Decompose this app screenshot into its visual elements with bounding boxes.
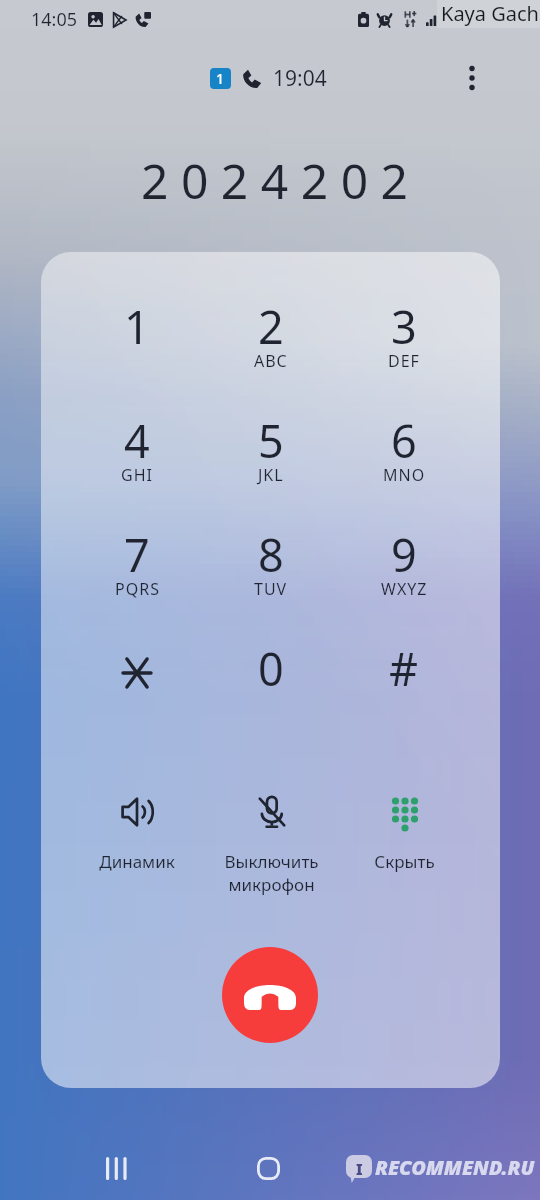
staticText: 98% — [463, 8, 495, 30]
staticText: DEF — [388, 350, 420, 372]
staticText: MNO — [383, 464, 426, 486]
button[interactable]: 3 — [344, 296, 464, 400]
staticText: 7 — [124, 524, 150, 585]
staticText: 2 — [258, 296, 284, 357]
button[interactable]: 6 — [344, 410, 464, 514]
button[interactable]: Recents — [97, 1148, 137, 1188]
staticText: 9 — [391, 524, 417, 585]
button[interactable]: 0 — [211, 638, 331, 742]
staticText: WXYZ — [381, 578, 428, 600]
button[interactable]: # — [344, 638, 464, 742]
staticText: 0 — [258, 638, 284, 699]
button[interactable]: 9 — [344, 524, 464, 628]
staticText: # — [389, 638, 419, 699]
button[interactable]: Скрыть — [338, 794, 470, 904]
staticText: 8 — [258, 524, 284, 585]
staticText: 6 — [391, 410, 417, 471]
staticText: ABC — [254, 350, 288, 372]
staticText: RECOMMEND.RU — [375, 1154, 535, 1181]
staticText: 4 — [124, 410, 150, 471]
staticText: 5 — [258, 410, 284, 471]
staticText: 1 — [124, 296, 150, 357]
button[interactable]: More options — [455, 61, 489, 95]
staticText: Скрыть — [374, 850, 435, 873]
staticText: 14:05 — [31, 7, 78, 32]
button[interactable]: 1 — [77, 296, 197, 400]
staticText: 3 — [391, 296, 417, 357]
staticText: I — [356, 1159, 363, 1179]
button[interactable]: 7 — [77, 524, 197, 628]
button[interactable]: 5 — [211, 410, 331, 514]
staticText: Выключить микрофон — [224, 850, 319, 896]
staticText: 19:04 — [273, 64, 327, 93]
button[interactable]: 2 — [211, 296, 331, 400]
button[interactable]: 8 — [211, 524, 331, 628]
button[interactable]: Выключить микрофон — [205, 794, 337, 904]
staticText: TUV — [254, 578, 288, 600]
button[interactable]: Home — [248, 1148, 288, 1188]
button[interactable]: Динамик — [71, 794, 203, 904]
staticText: Kaya Gach — [441, 0, 539, 27]
button[interactable] — [77, 638, 197, 742]
staticText: 1 — [216, 69, 225, 88]
staticText: 2 0 2 4 2 0 2 — [141, 148, 409, 213]
staticText: Динамик — [99, 850, 175, 873]
button[interactable]: End call — [222, 947, 318, 1043]
button[interactable]: 4 — [77, 410, 197, 514]
staticText: GHI — [121, 464, 153, 486]
staticText: PQRS — [115, 578, 160, 600]
staticText: JKL — [258, 464, 284, 486]
